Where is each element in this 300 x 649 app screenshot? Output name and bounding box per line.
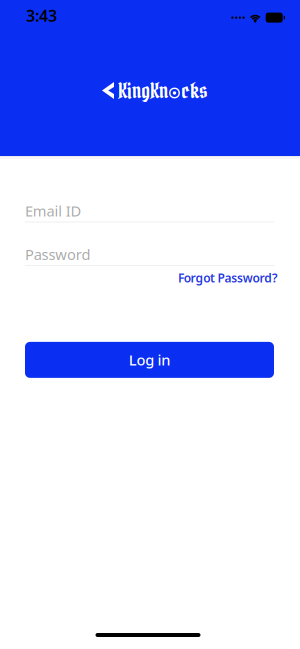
button[interactable]: Log in <box>25 342 274 378</box>
staticText: 3:43 <box>26 5 57 26</box>
button[interactable]: Password <box>25 244 274 266</box>
button[interactable]: Forgot Password? <box>178 270 278 286</box>
staticText: KingKn <box>118 77 168 104</box>
staticText: Forgot Password? <box>178 270 278 286</box>
button[interactable]: Email ID <box>25 201 274 222</box>
staticText: Log in <box>129 350 170 370</box>
staticText: Email ID <box>25 201 82 220</box>
staticText: Password <box>25 244 91 264</box>
staticText: cks <box>181 77 208 104</box>
